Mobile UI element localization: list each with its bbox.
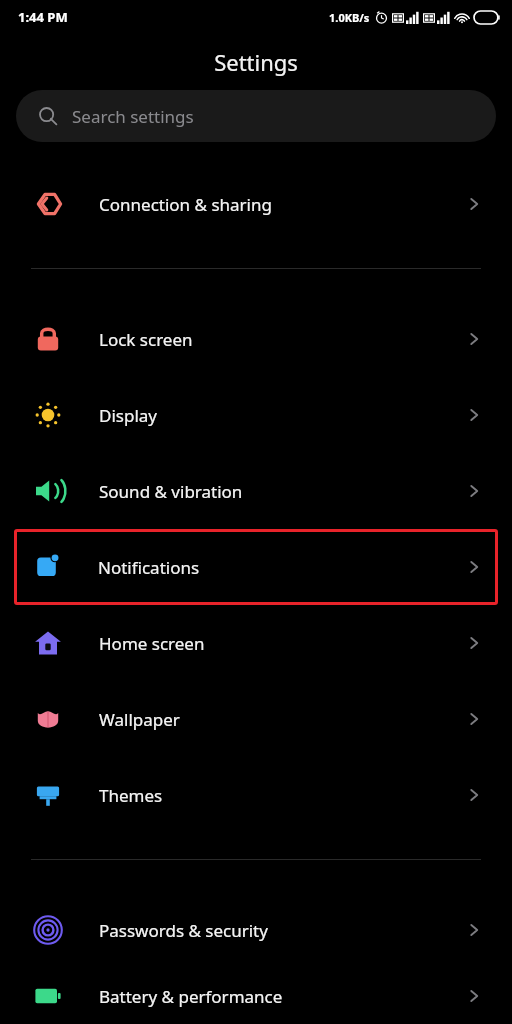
staticText: Themes xyxy=(99,784,465,807)
button[interactable]: Lock screen xyxy=(0,301,512,377)
button[interactable]: Themes xyxy=(0,757,512,833)
staticText: Notifications xyxy=(98,556,465,579)
button[interactable]: Passwords & security xyxy=(0,892,512,968)
button[interactable]: Wallpaper xyxy=(0,681,512,757)
staticText: 1.0KB/s xyxy=(329,10,370,25)
button[interactable]: Sound & vibration xyxy=(0,453,512,529)
button[interactable]: Notifications xyxy=(14,529,498,605)
staticText: Battery & performance xyxy=(99,985,465,1008)
staticText: Search settings xyxy=(72,105,194,128)
staticText: Home screen xyxy=(99,632,465,655)
button[interactable]: Home screen xyxy=(0,605,512,681)
button[interactable]: Search settings xyxy=(16,90,496,142)
button[interactable]: Battery & performance xyxy=(0,968,512,1024)
staticText: Lock screen xyxy=(99,328,465,351)
staticText: Settings xyxy=(214,47,298,77)
staticText: 1:44 PM xyxy=(18,8,68,26)
staticText: Sound & vibration xyxy=(99,480,465,503)
staticText: Display xyxy=(99,404,465,427)
staticText: Connection & sharing xyxy=(99,193,465,216)
button[interactable]: Connection & sharing xyxy=(0,166,512,242)
staticText: Wallpaper xyxy=(99,708,465,731)
button[interactable]: Display xyxy=(0,377,512,453)
staticText: Passwords & security xyxy=(99,919,465,942)
